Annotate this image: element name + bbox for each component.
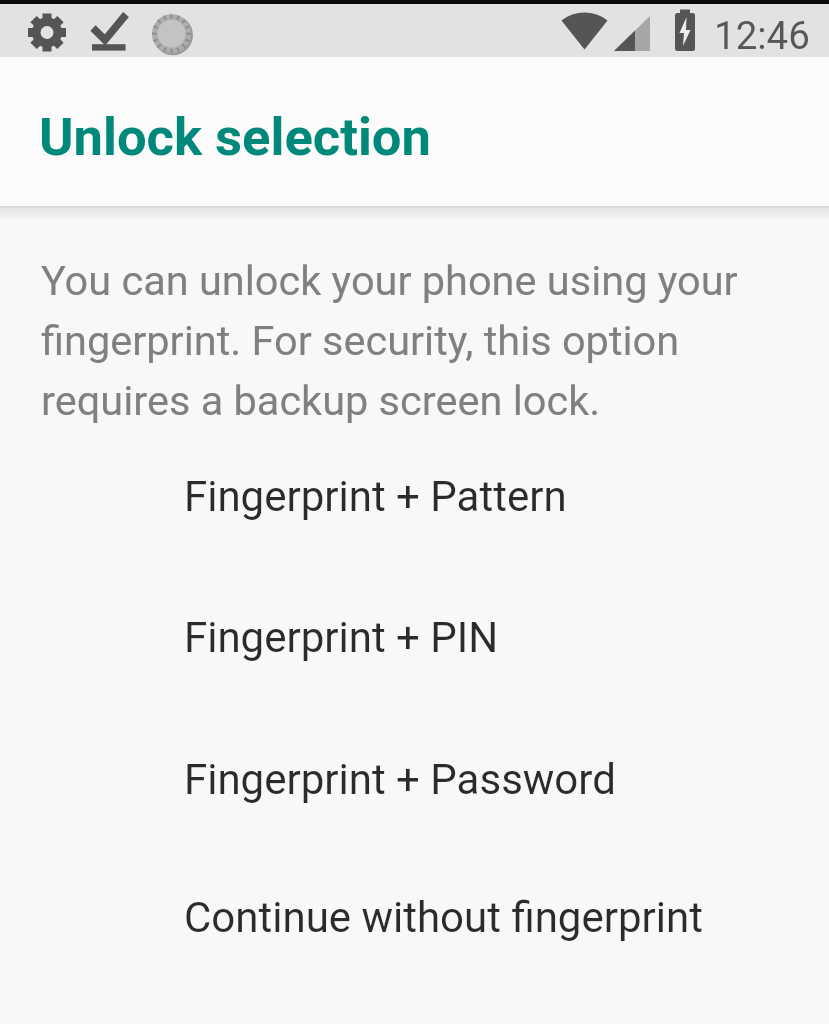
button[interactable]: Continue without fingerprint [0,847,829,987]
staticText: Fingerprint + Password [184,755,616,804]
staticText: Fingerprint + PIN [184,613,499,662]
button[interactable]: Fingerprint + Pattern [0,426,829,566]
button[interactable]: Fingerprint + PIN [0,567,829,707]
staticText: You can unlock your phone using your fin… [41,256,738,425]
button[interactable]: Fingerprint + Password [0,709,829,849]
staticText: 12:46 [714,13,810,58]
staticText: Fingerprint + Pattern [184,472,567,521]
staticText: Unlock selection [39,106,431,168]
staticText: Continue without fingerprint [184,893,703,942]
